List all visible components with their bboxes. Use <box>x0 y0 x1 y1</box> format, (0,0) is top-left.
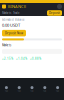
staticText: Tab <box>43 90 46 92</box>
staticText: Tab <box>5 90 8 92</box>
staticText: Deposit <box>49 11 60 15</box>
staticText: +2.15% <box>2 57 13 60</box>
staticText: Trade <box>13 11 20 15</box>
staticText: Markets <box>2 43 11 47</box>
staticText: Tab <box>56 90 59 92</box>
staticText: Estimated Balance <box>2 18 25 21</box>
staticText: +1.04% <box>16 57 27 60</box>
staticText: 0.00 USDT <box>2 22 20 28</box>
staticText: Markets <box>2 11 11 15</box>
staticText: BINANCE <box>8 4 26 9</box>
staticText: Deposit Now <box>5 31 23 35</box>
staticText: +0.88% <box>30 57 41 60</box>
staticText: Tab <box>30 90 33 92</box>
staticText: Tab <box>18 90 21 92</box>
